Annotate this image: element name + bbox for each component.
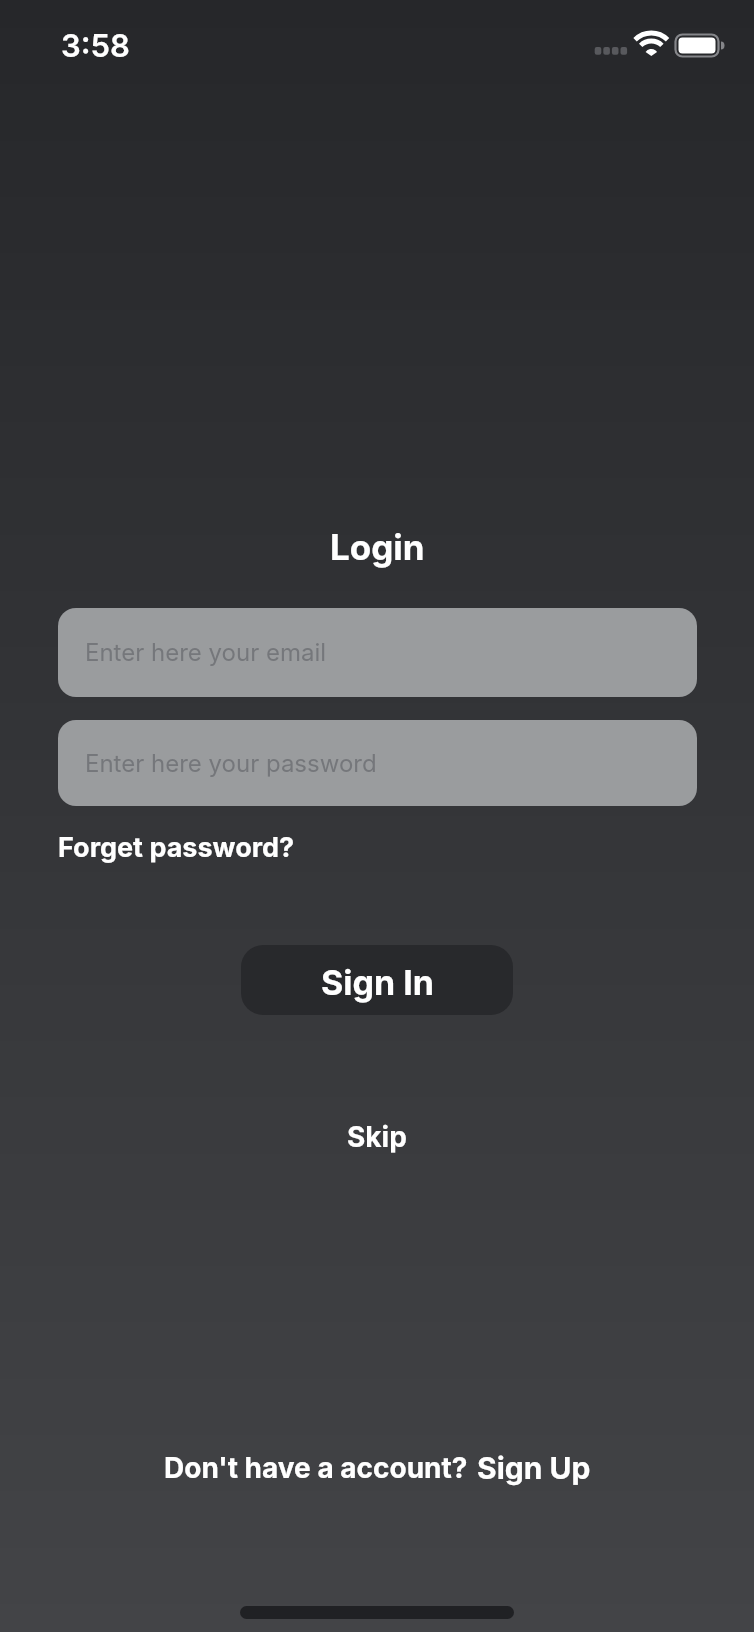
button[interactable]: Enter here your password — [58, 720, 697, 806]
staticText: Login — [330, 526, 425, 568]
staticText: Forget password? — [58, 831, 295, 864]
staticText: 3:58 — [61, 27, 130, 65]
staticText: Sign In — [321, 962, 434, 1003]
staticText: Enter here your password — [85, 749, 377, 778]
staticText: Enter here your email — [85, 638, 327, 667]
staticText: Skip — [347, 1120, 407, 1154]
button[interactable]: Sign In — [241, 945, 513, 1015]
button[interactable]: Forget password? — [58, 831, 295, 864]
button[interactable]: Enter here your email — [58, 608, 697, 697]
staticText: Sign Up — [477, 1450, 591, 1486]
staticText: Don't have a account? — [164, 1451, 468, 1485]
button[interactable]: Sign Up — [477, 1450, 591, 1486]
button[interactable]: Skip — [347, 1120, 407, 1154]
